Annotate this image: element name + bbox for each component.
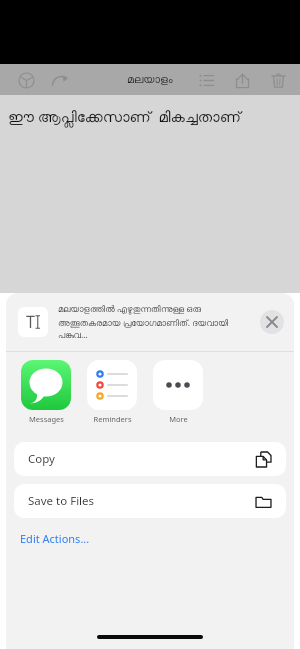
staticText: മലയാളത്തിൽ എഴുതുന്നതിന്നുള്ള ഒരു — [58, 303, 201, 315]
button[interactable]: More — [152, 360, 204, 424]
button[interactable]: Share — [228, 66, 256, 94]
staticText: Copy — [28, 451, 255, 467]
staticText: Reminders — [93, 414, 132, 424]
staticText: മലയാളം — [127, 74, 173, 85]
button[interactable]: Copy — [14, 442, 286, 476]
button[interactable]: Close — [260, 310, 284, 334]
staticText: Edit Actions... — [20, 531, 90, 546]
staticText: More — [169, 414, 188, 424]
button[interactable]: Delete — [264, 66, 292, 94]
button[interactable]: മലയാളത്തിൽ എഴുതുന്നതിന്നുള്ള ഒരു — [18, 303, 284, 341]
button[interactable]: Redo — [46, 66, 74, 94]
staticText: ഈ ആപ്ലിക്കേസാണ് മികച്ചതാണ് — [8, 106, 241, 126]
button[interactable]: Markup — [12, 66, 40, 94]
button[interactable]: Edit Actions... — [20, 528, 90, 549]
button[interactable]: Save to Files — [14, 484, 286, 518]
staticText: Messages — [29, 414, 64, 424]
staticText: അത്ഭുതകരമായ പ്രയോഗമാണിത്. ദയവായി പങ്കുവ… — [58, 317, 254, 341]
staticText: Save to Files — [28, 493, 255, 509]
button[interactable]: Messages — [20, 360, 72, 424]
button[interactable]: Reminders — [86, 360, 138, 424]
button[interactable]: List — [192, 66, 220, 94]
